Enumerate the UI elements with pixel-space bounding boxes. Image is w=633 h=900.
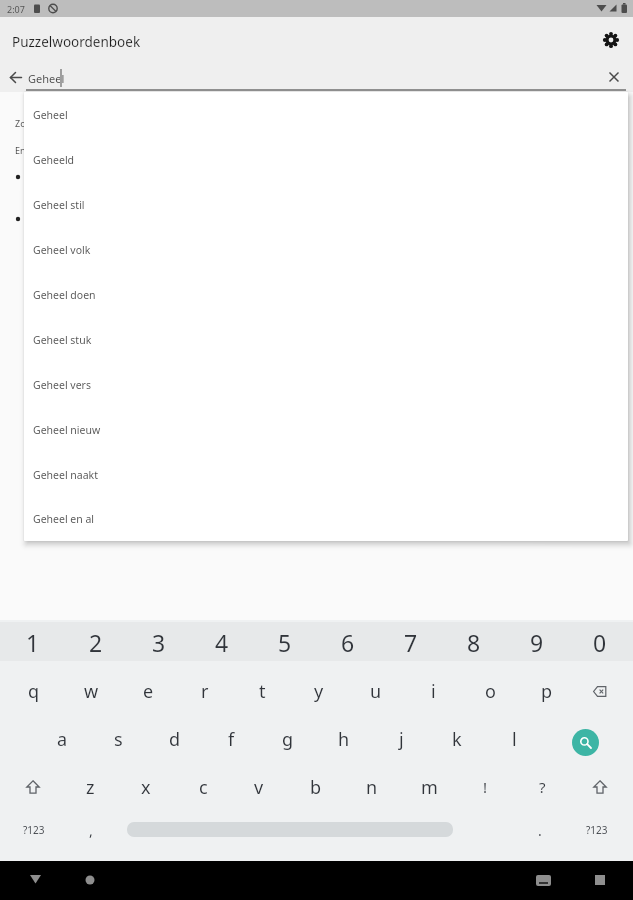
button[interactable]: j [376, 719, 426, 759]
button[interactable]: Geheeld [24, 137, 628, 182]
button[interactable] [572, 729, 599, 756]
staticText: Geheel naakt [33, 468, 99, 482]
staticText: Geheel [33, 108, 68, 122]
staticText: n [366, 775, 378, 800]
button[interactable]: g [263, 719, 313, 759]
button[interactable]: t [237, 671, 287, 711]
button[interactable]: 3 [129, 623, 189, 661]
button[interactable]: 9 [507, 623, 567, 661]
staticText: p [541, 679, 553, 704]
staticText: 4 [215, 627, 229, 658]
button[interactable]: Geheel vers [24, 362, 628, 407]
button[interactable] [603, 66, 625, 88]
button[interactable]: b [291, 767, 341, 807]
button[interactable]: 2 [66, 623, 126, 661]
staticText: b [310, 775, 322, 800]
staticText: d [169, 727, 181, 752]
staticText: w [84, 679, 99, 704]
button[interactable]: m [404, 767, 454, 807]
staticText: f [228, 727, 235, 752]
button[interactable]: f [206, 719, 256, 759]
button[interactable]: l [489, 719, 539, 759]
button[interactable]: c [178, 767, 228, 807]
button[interactable]: y [294, 671, 344, 711]
button[interactable]: h [319, 719, 369, 759]
staticText: 8 [467, 627, 481, 658]
staticText: 5 [278, 627, 292, 658]
button[interactable]: q [9, 671, 59, 711]
staticText: u [370, 679, 382, 704]
staticText: Puzzelwoordenboek [12, 33, 141, 51]
staticText: Geheeld [33, 153, 75, 167]
button[interactable]: Geheel nieuw [24, 407, 628, 452]
button[interactable]: 8 [444, 623, 504, 661]
staticText: i [431, 679, 436, 704]
staticText: ?123 [23, 823, 45, 837]
button[interactable] [8, 767, 58, 807]
button[interactable] [5, 67, 27, 89]
button[interactable]: 5 [255, 623, 315, 661]
button[interactable]: 4 [192, 623, 252, 661]
button[interactable]: w [66, 671, 116, 711]
staticText: q [28, 679, 40, 704]
staticText: Zoek [15, 117, 36, 129]
staticText: m [421, 775, 438, 800]
staticText: s [114, 727, 123, 752]
button[interactable]: z [65, 767, 115, 807]
button[interactable] [586, 866, 614, 894]
button[interactable]: 6 [318, 623, 378, 661]
staticText: Geheel doen [33, 288, 96, 302]
staticText: 0 [593, 627, 607, 658]
staticText: j [399, 727, 404, 752]
button[interactable]: d [150, 719, 200, 759]
button[interactable]: ? [517, 767, 567, 807]
button[interactable]: s [93, 719, 143, 759]
staticText: g [282, 727, 294, 752]
button[interactable]: v [234, 767, 284, 807]
staticText: ? [539, 777, 546, 797]
staticText: l [512, 727, 517, 752]
button[interactable]: i [408, 671, 458, 711]
staticText: . [538, 821, 542, 840]
button[interactable]: 0 [570, 623, 630, 661]
button[interactable]: 1 [3, 623, 63, 661]
button[interactable]: Geheel stil [24, 182, 628, 227]
button[interactable]: , [71, 812, 111, 848]
button[interactable]: a [37, 719, 87, 759]
button[interactable] [598, 27, 624, 53]
staticText: 7 [404, 627, 418, 658]
staticText: Geheel en al [33, 512, 95, 526]
button[interactable]: Geheel stuk [24, 317, 628, 362]
button[interactable]: 7 [381, 623, 441, 661]
button[interactable]: Geheel naakt [24, 452, 628, 497]
staticText: Geheel stuk [33, 333, 92, 347]
staticText: 3 [152, 627, 166, 658]
button[interactable]: ?123 [572, 812, 622, 848]
button[interactable]: e [123, 671, 173, 711]
button[interactable]: n [347, 767, 397, 807]
button[interactable]: Geheel volk [24, 227, 628, 272]
button[interactable]: r [180, 671, 230, 711]
button[interactable]: Geheel [24, 92, 628, 137]
button[interactable]: u [351, 671, 401, 711]
staticText: k [452, 727, 462, 752]
staticText: t [259, 679, 266, 704]
button[interactable]: Geheel en al [24, 497, 628, 541]
button[interactable] [575, 671, 625, 711]
button[interactable]: ! [460, 767, 510, 807]
button[interactable]: k [432, 719, 482, 759]
button[interactable]: Geheel doen [24, 272, 628, 317]
button[interactable] [21, 866, 49, 894]
button[interactable]: x [121, 767, 171, 807]
button[interactable]: . [520, 812, 560, 848]
button[interactable]: o [465, 671, 515, 711]
staticText: 2 [89, 627, 103, 658]
button[interactable] [76, 866, 104, 894]
staticText: 2:07 [7, 3, 25, 15]
button[interactable]: ?123 [9, 812, 59, 848]
button[interactable] [529, 866, 557, 894]
staticText: z [86, 775, 95, 800]
button[interactable]: p [522, 671, 572, 711]
button[interactable] [575, 767, 625, 807]
